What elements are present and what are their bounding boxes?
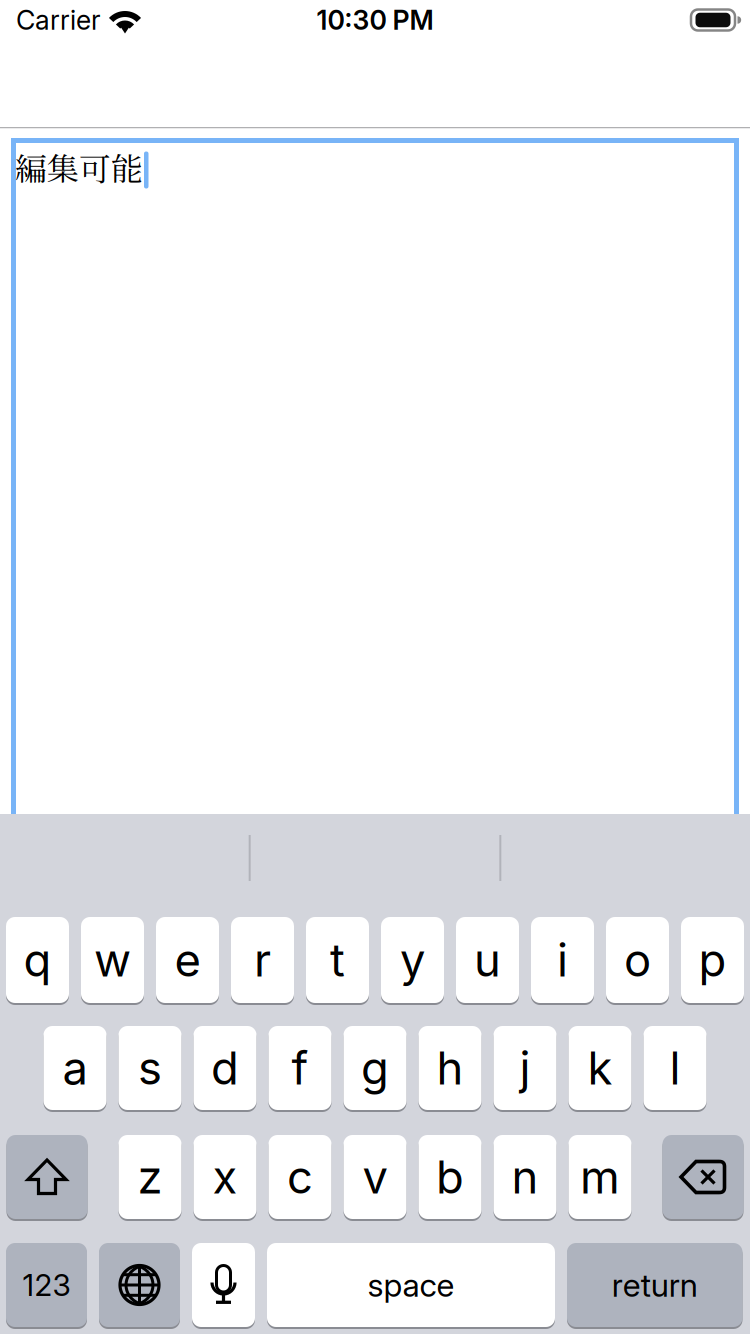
staticText: c — [287, 1150, 313, 1204]
staticText: s — [138, 1041, 162, 1095]
staticText: m — [580, 1150, 620, 1204]
staticText: b — [436, 1150, 464, 1204]
staticText: j — [519, 1041, 530, 1095]
staticText: w — [94, 933, 131, 987]
staticText: d — [211, 1041, 239, 1095]
staticText: u — [474, 933, 501, 987]
staticText: 編集可能 — [15, 144, 143, 190]
staticText: Carrier — [16, 4, 101, 36]
staticText: g — [361, 1041, 389, 1095]
staticText: h — [436, 1041, 463, 1095]
staticText: f — [291, 1041, 308, 1095]
staticText: return — [612, 1266, 698, 1304]
staticText: k — [587, 1041, 612, 1095]
staticText: x — [212, 1150, 237, 1204]
staticText: z — [137, 1150, 162, 1204]
staticText: n — [511, 1150, 538, 1204]
staticText: r — [254, 933, 271, 987]
staticText: 123 — [22, 1267, 70, 1303]
staticText: q — [23, 933, 51, 987]
staticText: 10:30 PM — [316, 4, 433, 36]
staticText: v — [362, 1150, 387, 1204]
staticText: l — [669, 1041, 680, 1095]
staticText: a — [62, 1041, 87, 1095]
staticText: e — [174, 933, 200, 987]
staticText: space — [367, 1266, 454, 1304]
staticText: i — [557, 933, 568, 987]
staticText: y — [400, 933, 425, 987]
staticText: o — [624, 933, 651, 987]
staticText: t — [330, 933, 345, 987]
staticText: p — [698, 933, 726, 987]
